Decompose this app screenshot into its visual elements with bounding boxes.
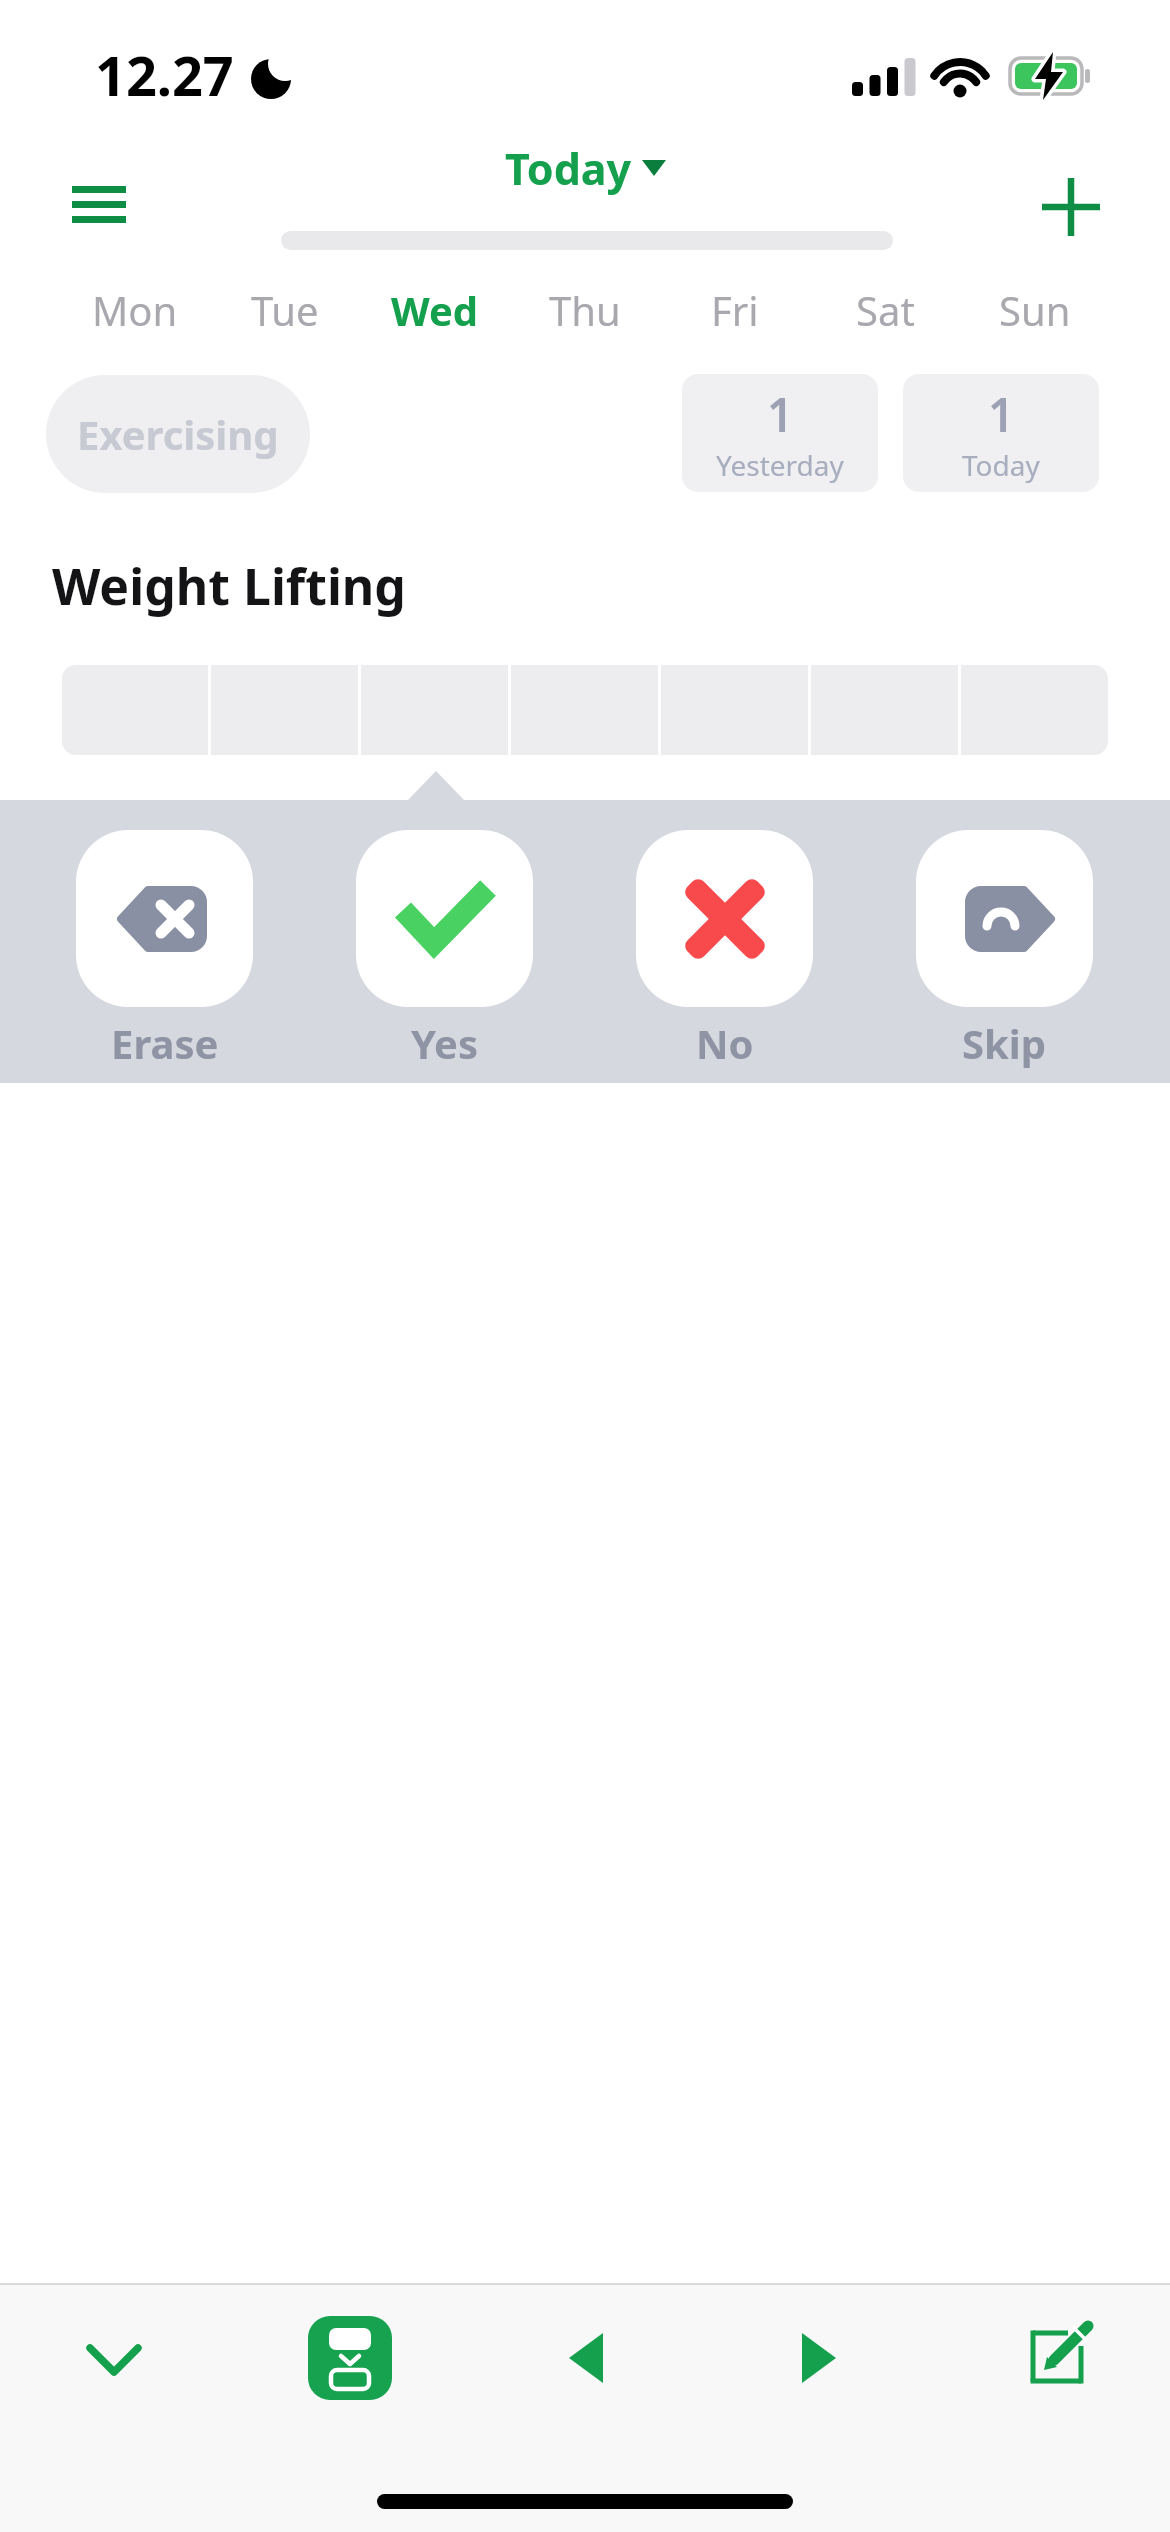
- button[interactable]: [1042, 178, 1100, 236]
- button[interactable]: [636, 830, 813, 1007]
- staticText: Skip: [962, 1016, 1047, 1068]
- staticText: Erase: [111, 1016, 219, 1068]
- staticText: Yesterday: [716, 446, 844, 484]
- button[interactable]: [76, 830, 253, 1007]
- button[interactable]: [58, 2320, 170, 2400]
- button[interactable]: 1: [682, 374, 878, 492]
- staticText: Sat: [856, 283, 915, 335]
- staticText: 1: [988, 383, 1015, 446]
- button[interactable]: [916, 830, 1093, 1007]
- button[interactable]: 1: [903, 374, 1099, 492]
- button[interactable]: [540, 2320, 632, 2396]
- staticText: Today: [505, 139, 632, 198]
- button[interactable]: Fri: [660, 283, 810, 335]
- staticText: Sun: [999, 283, 1071, 335]
- staticText: Fri: [711, 283, 759, 335]
- staticText: Today: [962, 446, 1040, 484]
- staticText: Mon: [92, 283, 178, 335]
- staticText: Yes: [411, 1016, 478, 1068]
- button[interactable]: Today: [0, 138, 1170, 198]
- staticText: Tue: [251, 283, 319, 335]
- staticText: Thu: [549, 283, 621, 335]
- button[interactable]: Wed: [360, 283, 510, 335]
- button[interactable]: [356, 830, 533, 1007]
- button[interactable]: [773, 2320, 865, 2396]
- button[interactable]: Sun: [960, 283, 1110, 335]
- staticText: Weight Lifting: [52, 552, 406, 620]
- button[interactable]: [1012, 2306, 1112, 2398]
- button[interactable]: Tue: [210, 283, 360, 335]
- button[interactable]: Thu: [510, 283, 660, 335]
- staticText: Wed: [391, 283, 479, 335]
- button[interactable]: [72, 186, 126, 224]
- button[interactable]: [308, 2316, 392, 2400]
- button[interactable]: Mon: [60, 283, 210, 335]
- staticText: Exercising: [77, 407, 279, 461]
- button[interactable]: Sat: [810, 283, 960, 335]
- staticText: 12.27: [95, 38, 234, 112]
- staticText: No: [696, 1016, 754, 1068]
- button[interactable]: Exercising: [46, 375, 310, 493]
- staticText: 1: [767, 383, 794, 446]
